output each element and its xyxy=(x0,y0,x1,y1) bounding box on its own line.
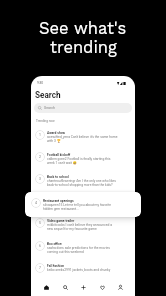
button[interactable]: 3 xyxy=(31,174,135,186)
button[interactable]: 6 xyxy=(31,241,135,253)
staticText: Trending now xyxy=(36,119,55,123)
staticText: Back to school xyxy=(47,175,69,179)
staticText: back-to-school shopping more than the ki… xyxy=(47,183,113,187)
button[interactable]: 2 xyxy=(31,152,135,164)
staticText: calben gone2 Football is finally startin… xyxy=(47,157,111,161)
staticText: new sequel for my favourite game xyxy=(47,227,97,231)
button[interactable]: 5 xyxy=(31,218,135,230)
staticText: sasha does askr predictions for the movi… xyxy=(47,246,110,250)
staticText: See what's xyxy=(39,19,127,38)
button[interactable]: Likes xyxy=(93,279,111,296)
staticText: mikkitcooks I can't believe they announc… xyxy=(47,223,112,227)
button[interactable]: 1 xyxy=(31,130,135,142)
button[interactable]: Create xyxy=(74,279,92,296)
staticText: hidden gem restaurant... xyxy=(43,207,79,211)
staticText: 1 xyxy=(39,133,41,137)
button[interactable]: Profile xyxy=(111,279,129,296)
staticText: Restaurant openings xyxy=(43,199,74,203)
staticText: Search xyxy=(44,106,56,110)
staticText: chanteoufloweringr Am I the only one who… xyxy=(47,179,117,183)
staticText: trending xyxy=(50,38,117,57)
button[interactable]: Search xyxy=(56,279,74,296)
staticText: 6 xyxy=(39,244,41,248)
staticText: week 1 can't wait 😄 xyxy=(47,161,77,165)
staticText: Football kickoff xyxy=(47,153,71,157)
staticText: Fall fashion xyxy=(47,264,65,268)
button[interactable]: 4 xyxy=(25,192,141,217)
staticText: coming out this weekend xyxy=(47,250,84,254)
staticText: keiko.seeks2991 jackets, boots and chunk… xyxy=(47,268,111,272)
staticText: Search xyxy=(35,90,61,100)
staticText: aoewifted_yena Can't believe it's the sa… xyxy=(47,135,118,139)
staticText: Award show xyxy=(47,131,66,135)
staticText: with 3 🏆 xyxy=(47,139,61,143)
staticText: Video game trailer xyxy=(47,219,75,223)
button[interactable]: Home xyxy=(37,279,55,296)
staticText: 4 xyxy=(35,201,37,205)
button[interactable]: Search xyxy=(34,103,132,113)
staticText: 3 xyxy=(39,177,41,181)
staticText: Box office xyxy=(47,242,62,246)
staticText: silvaqueen15 Let me tell you about my fa… xyxy=(43,203,112,207)
staticText: 2 xyxy=(39,155,41,159)
staticText: 7 xyxy=(39,266,41,270)
staticText: 5 xyxy=(39,221,41,225)
staticText: 9:30 xyxy=(37,81,44,85)
button[interactable]: 7 xyxy=(31,263,135,273)
